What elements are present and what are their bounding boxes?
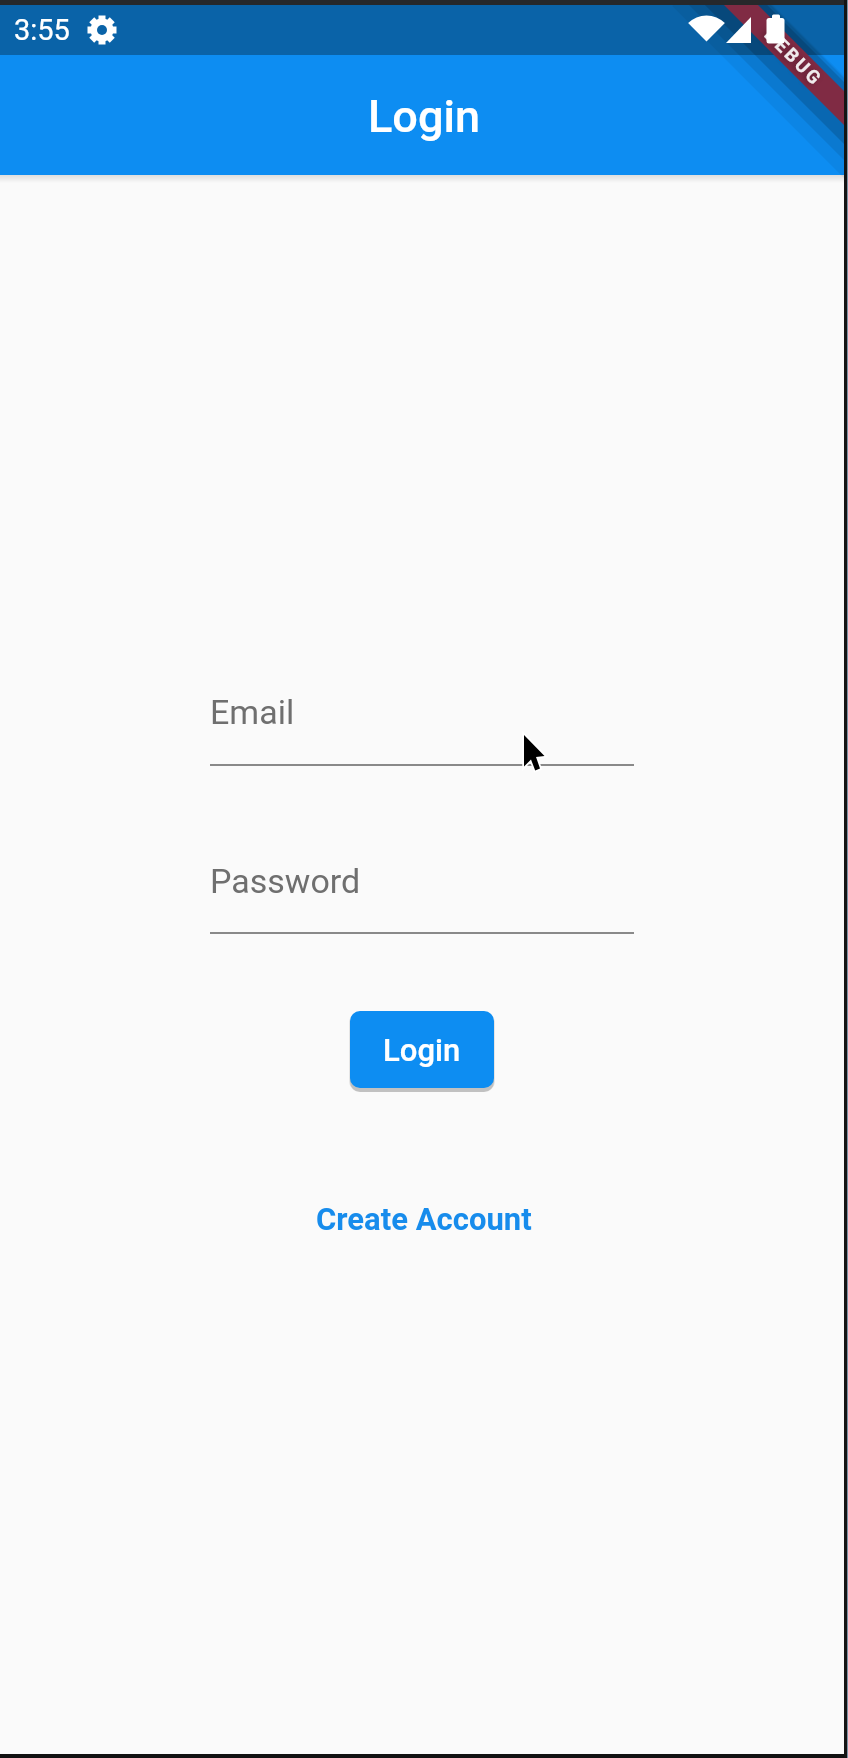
button[interactable]: Login	[350, 1011, 494, 1088]
staticText: DEBUG	[760, 24, 828, 92]
button[interactable]: Email	[210, 680, 634, 768]
button[interactable]: Create Account	[316, 1201, 532, 1237]
staticText: Login	[383, 1032, 461, 1068]
staticText: Password	[210, 861, 361, 901]
staticText: Email	[210, 692, 295, 732]
staticText: 3:55	[14, 13, 70, 47]
button[interactable]: Password	[210, 849, 634, 937]
staticText: Login	[368, 90, 481, 143]
